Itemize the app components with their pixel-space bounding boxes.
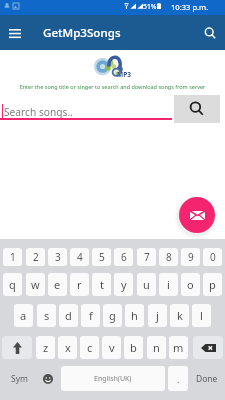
button[interactable]: 3 [48,248,67,266]
staticText: i [167,277,170,292]
staticText: u [143,277,150,292]
staticText: q [9,277,16,292]
staticText: v [109,340,115,355]
button[interactable]: c [80,336,99,359]
button[interactable]: Emoji [38,366,58,391]
button[interactable]: x [58,336,77,359]
staticText: h [131,308,138,323]
staticText: 7 [144,250,150,264]
button[interactable]: 5 [92,248,111,266]
staticText: English(UK) [94,374,132,384]
button[interactable]: o [181,273,200,296]
staticText: Enter the song title or singer to search… [0,83,225,90]
button[interactable]: i [159,273,178,296]
staticText: g [109,308,116,323]
button[interactable]: 6 [114,248,133,266]
staticText: MP3 [117,70,131,79]
staticText: GetMp3Songs [43,25,121,41]
button[interactable]: 8 [159,248,178,266]
button[interactable]: j [148,304,167,327]
button[interactable]: u [137,273,156,296]
button[interactable]: Backspace [193,336,223,359]
staticText: x [65,340,71,355]
staticText: l [200,308,203,323]
staticText: 9 [188,250,194,264]
staticText: m [173,340,184,355]
button[interactable]: w [26,273,45,296]
button[interactable]: Sym [3,366,36,391]
staticText: 0 [210,250,216,264]
staticText: d [65,308,72,323]
button[interactable]: Space [61,366,165,391]
button[interactable]: z [36,336,55,359]
button[interactable]: . [168,366,188,391]
staticText: 3 [55,250,61,264]
staticText: Search songs.. [4,105,73,119]
button[interactable]: r [70,273,89,296]
button[interactable]: Compose message [179,197,215,233]
staticText: 4 [77,250,83,264]
button[interactable]: m [169,336,188,359]
staticText: 51% [143,2,157,11]
staticText: 10:33 p.m. [171,2,209,12]
button[interactable]: 2 [26,248,45,266]
staticText: p [209,277,216,292]
staticText: f [89,308,93,323]
button[interactable]: d [59,304,78,327]
staticText: . [177,373,180,385]
button[interactable]: s [37,304,56,327]
button[interactable]: t [92,273,111,296]
button[interactable]: h [125,304,144,327]
button[interactable]: Search [199,22,221,44]
staticText: Sym [11,373,28,385]
button[interactable]: 0 [203,248,222,266]
button[interactable]: f [81,304,100,327]
staticText: Done [196,373,218,385]
staticText: t [100,277,104,292]
staticText: k [177,308,183,323]
button[interactable]: Open navigation menu [4,22,26,44]
button[interactable]: 9 [181,248,200,266]
staticText: w [31,277,40,292]
staticText: s [44,308,50,323]
staticText: 8 [166,250,172,264]
button[interactable]: v [102,336,121,359]
staticText: o [187,277,194,292]
staticText: 2 [33,250,39,264]
button[interactable]: e [48,273,67,296]
button[interactable]: 1 [3,248,22,266]
staticText: n [153,340,160,355]
staticText: b [130,340,137,355]
staticText: j [156,308,159,323]
staticText: 6 [121,250,127,264]
button[interactable]: k [170,304,189,327]
button[interactable]: 7 [137,248,156,266]
staticText: z [43,340,49,355]
button[interactable]: q [3,273,22,296]
button[interactable]: Shift [2,336,32,359]
staticText: e [54,277,61,292]
button[interactable]: p [203,273,222,296]
staticText: 5 [99,250,105,264]
staticText: c [87,340,93,355]
button[interactable]: l [192,304,211,327]
button[interactable]: a [14,304,33,327]
button[interactable]: 4 [70,248,89,266]
button[interactable]: y [114,273,133,296]
button[interactable]: g [103,304,122,327]
staticText: y [121,277,127,292]
button[interactable]: Search songs [174,95,220,123]
button[interactable]: n [147,336,166,359]
staticText: r [77,277,82,292]
button[interactable]: b [124,336,143,359]
staticText: a [20,308,27,323]
staticText: 1 [10,250,16,264]
button[interactable]: Done [191,366,222,391]
